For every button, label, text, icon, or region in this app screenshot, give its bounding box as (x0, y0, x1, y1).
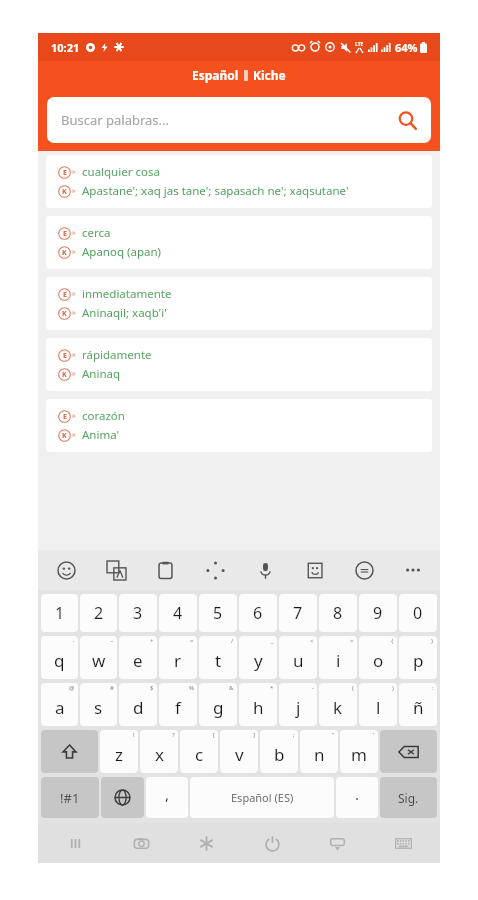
staticText: # (110, 684, 114, 692)
button[interactable]: 8 (319, 594, 357, 632)
staticText: E (63, 412, 67, 422)
staticText: Aninaqil; xaqb'i' (82, 305, 167, 321)
button[interactable]: More options (400, 557, 426, 583)
staticText: ' (373, 731, 375, 739)
button[interactable]: Power (257, 828, 287, 858)
button[interactable]: 3 (119, 594, 157, 632)
staticText: ? (172, 731, 175, 739)
button[interactable]: 4 (159, 594, 197, 632)
button[interactable]: E (46, 399, 432, 452)
staticText: E (63, 168, 67, 178)
button[interactable]: % (159, 683, 197, 726)
button[interactable]: = (159, 636, 197, 679)
button[interactable]: @ (41, 683, 78, 726)
button[interactable]: ] (220, 730, 258, 773)
button[interactable]: Change language (101, 777, 144, 818)
staticText: x (155, 743, 164, 766)
button[interactable]: 9 (359, 594, 397, 632)
staticText: } (431, 637, 434, 645)
button[interactable]: * (239, 683, 277, 726)
button[interactable]: Recents (60, 828, 90, 858)
button[interactable]: Assistant (191, 828, 221, 858)
button[interactable]: Move cursor (201, 556, 229, 584)
button[interactable]: ' (340, 730, 378, 773)
button[interactable]: Camera (126, 828, 156, 858)
staticText: f (175, 696, 181, 719)
staticText: » (72, 430, 76, 440)
button[interactable]: Clipboard (151, 556, 179, 584)
staticText: K (62, 187, 67, 197)
staticText: » (72, 411, 76, 421)
button[interactable]: 6 (239, 594, 277, 632)
staticText: o (373, 649, 384, 672)
staticText: Kiche (253, 67, 286, 83)
staticText: / (231, 637, 234, 645)
staticText: » (72, 186, 76, 196)
button[interactable]: < (279, 636, 317, 679)
button[interactable]: # (80, 683, 117, 726)
staticText: b (274, 743, 285, 766)
button[interactable]: Hide keyboard (322, 828, 352, 858)
button[interactable]: ~ (80, 636, 117, 679)
button[interactable]: 0 (399, 594, 437, 632)
button[interactable]: + (119, 636, 157, 679)
button[interactable]: 5 (199, 594, 237, 632)
button[interactable]: 2 (80, 594, 117, 632)
staticText: y (254, 649, 263, 672)
staticText: » (72, 369, 76, 379)
staticText: h (253, 696, 264, 719)
button[interactable]: Buscar palabras... (47, 97, 431, 143)
staticText: 1 (55, 602, 65, 624)
staticText: » (72, 167, 76, 177)
button[interactable]: E (46, 216, 432, 269)
button[interactable]: : (399, 683, 437, 726)
staticText: " (332, 731, 335, 739)
button[interactable]: , (146, 777, 188, 818)
button[interactable]: Keyboard layout (388, 828, 418, 858)
staticText: » (72, 289, 76, 299)
button[interactable]: !#1 (41, 777, 99, 818)
staticText: 6 (253, 602, 263, 624)
button[interactable]: Stickers (301, 556, 329, 584)
button[interactable]: Settings (350, 556, 378, 584)
staticText: l (376, 696, 381, 719)
button[interactable]: . (336, 777, 378, 818)
button[interactable]: Sig. (380, 777, 437, 818)
button[interactable]: { (359, 636, 397, 679)
button[interactable]: Emoji (52, 556, 80, 584)
staticText: e (133, 649, 143, 672)
button[interactable]: " (300, 730, 338, 773)
button[interactable]: ? (140, 730, 178, 773)
staticText: 2 (94, 602, 104, 624)
button[interactable]: > (319, 636, 357, 679)
staticText: u (293, 649, 304, 672)
button[interactable]: } (399, 636, 437, 679)
button[interactable]: E (46, 277, 432, 330)
button[interactable]: Backspace (380, 730, 437, 773)
staticText: a (55, 696, 65, 719)
button[interactable]: Shift (41, 730, 98, 773)
button[interactable]: - (279, 683, 317, 726)
button[interactable]: $ (119, 683, 157, 726)
button[interactable]: ! (100, 730, 138, 773)
staticText: [ (213, 731, 215, 739)
staticText: j (296, 696, 301, 719)
button[interactable]: / (199, 636, 237, 679)
staticText: $ (150, 684, 154, 692)
button[interactable]: Español (ES) (190, 777, 334, 818)
staticText: ( (352, 684, 354, 692)
button[interactable]: & (199, 683, 237, 726)
button[interactable]: ) (359, 683, 397, 726)
button[interactable]: _ (239, 636, 277, 679)
button[interactable]: E (46, 338, 432, 391)
button[interactable]: Voice input (251, 556, 279, 584)
button[interactable]: · (41, 636, 78, 679)
button[interactable]: [ (180, 730, 218, 773)
button[interactable]: ( (319, 683, 357, 726)
button[interactable]: 1 (41, 594, 78, 632)
button[interactable]: ; (260, 730, 298, 773)
staticText: 0 (413, 602, 423, 624)
button[interactable]: E (46, 155, 432, 208)
button[interactable]: 7 (279, 594, 317, 632)
button[interactable]: Translate (102, 556, 130, 584)
